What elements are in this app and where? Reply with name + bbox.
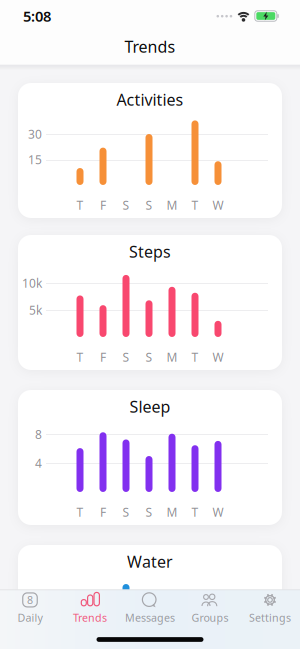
staticText: 8	[35, 426, 42, 442]
staticText: 8	[35, 591, 42, 607]
staticText: T	[76, 197, 83, 213]
staticText: Trends	[124, 36, 175, 57]
staticText: Daily	[17, 610, 42, 625]
staticText: 30	[28, 126, 42, 142]
staticText: Settings	[249, 610, 291, 625]
staticText: F	[100, 504, 106, 520]
staticText: F	[100, 197, 106, 213]
staticText: Groups	[191, 610, 228, 625]
staticText: T	[76, 349, 83, 365]
staticText: S	[145, 197, 152, 213]
staticText: Water	[127, 551, 173, 572]
button[interactable]: Settings	[240, 591, 300, 625]
staticText: T	[76, 504, 83, 520]
staticText: T	[191, 197, 198, 213]
staticText: W	[212, 504, 223, 520]
button[interactable]: Trends	[60, 591, 120, 625]
staticText: 5k	[29, 302, 42, 318]
staticText: 15	[28, 151, 42, 167]
staticText: T	[191, 349, 198, 365]
staticText: Steps	[129, 241, 171, 262]
staticText: 4	[35, 455, 42, 471]
staticText: S	[145, 504, 152, 520]
staticText: F	[100, 349, 106, 365]
staticText: M	[166, 197, 177, 213]
staticText: 4	[35, 615, 42, 631]
staticText: M	[166, 349, 177, 365]
staticText: M	[166, 504, 177, 520]
staticText: 5:08	[23, 6, 51, 26]
staticText: Messages	[125, 610, 175, 625]
button[interactable]: Messages	[120, 591, 180, 625]
staticText: 8	[27, 593, 33, 607]
button[interactable]: Groups	[180, 591, 240, 625]
staticText: S	[122, 197, 129, 213]
staticText: Activities	[116, 89, 183, 110]
button[interactable]: 8	[0, 591, 60, 625]
staticText: T	[191, 504, 198, 520]
staticText: W	[212, 349, 223, 365]
staticText: 10k	[22, 275, 42, 291]
staticText: S	[145, 349, 152, 365]
staticText: S	[122, 349, 129, 365]
staticText: Sleep	[129, 396, 170, 417]
staticText: W	[212, 197, 223, 213]
staticText: S	[122, 504, 129, 520]
staticText: Trends	[73, 610, 107, 625]
